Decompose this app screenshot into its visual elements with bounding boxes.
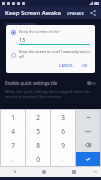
button[interactable]: CANCEL: [57, 62, 76, 69]
button[interactable]: 7: [1, 138, 25, 152]
button[interactable]: Keep the screen on until I manually turn…: [11, 49, 90, 59]
button[interactable]: 6: [51, 124, 75, 138]
button[interactable]: 1: [1, 110, 25, 124]
staticText: Keep the screen on until I manually turn…: [19, 49, 90, 59]
button[interactable]: Space: [76, 124, 100, 138]
button[interactable]: Back: [0, 167, 29, 177]
button[interactable]: 9: [51, 138, 75, 152]
button[interactable]: Backspace: [76, 138, 100, 152]
button[interactable]: 5: [26, 124, 50, 138]
button[interactable]: 3: [51, 110, 75, 124]
staticText: 8: [36, 141, 40, 150]
button[interactable]: 8: [26, 138, 50, 152]
staticText: 3: [61, 113, 65, 122]
staticText: 6: [61, 127, 65, 136]
button[interactable]: Recents: [59, 167, 89, 177]
staticText: Keep the screen on for: [19, 29, 60, 34]
button[interactable]: Home: [29, 167, 59, 177]
staticText: Keep Screen Awake: [5, 9, 61, 17]
button[interactable]: 0: [26, 152, 50, 166]
button[interactable]: Minus: [76, 110, 100, 124]
staticText: When the quick settings tile is tapped (…: [5, 89, 96, 99]
staticText: 9: [61, 141, 65, 150]
staticText: 2: [36, 113, 40, 122]
button[interactable]: Enter: [76, 152, 100, 166]
staticText: UPGRADE: [67, 11, 84, 16]
staticText: General settings: [5, 21, 36, 26]
staticText: 4: [11, 127, 15, 136]
button[interactable]: OK: [80, 62, 90, 69]
button[interactable]: 4: [1, 124, 25, 138]
staticText: 1: [11, 113, 15, 122]
button[interactable]: Share: [88, 8, 98, 18]
staticText: OK: [82, 63, 88, 68]
staticText: 7: [11, 141, 15, 150]
button[interactable]: Hide keyboard: [89, 167, 101, 177]
button[interactable]: UPGRADE: [65, 9, 86, 18]
staticText: 5: [36, 127, 40, 136]
staticText: CANCEL: [59, 63, 74, 68]
button[interactable]: 2: [26, 110, 50, 124]
staticText: 0: [36, 155, 40, 164]
staticText: Enable quick settings tile: [5, 80, 87, 86]
button[interactable]: Enable quick settings tile: [0, 79, 101, 87]
staticText: ,: [12, 156, 14, 163]
button[interactable]: Keep the screen on for: [11, 29, 90, 45]
staticText: 15: [19, 36, 26, 43]
staticText: .: [62, 156, 64, 163]
